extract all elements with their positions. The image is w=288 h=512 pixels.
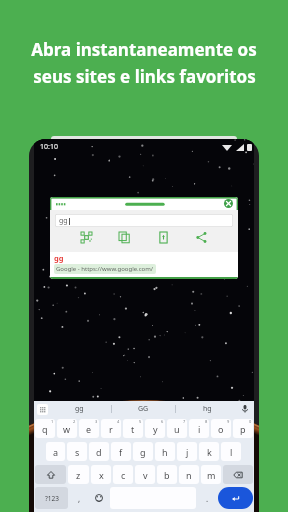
staticText: i <box>198 423 201 435</box>
staticText: gg <box>75 404 84 414</box>
staticText: 10:10 <box>40 142 58 152</box>
staticText: 8 <box>205 419 208 424</box>
button[interactable]: hg <box>176 401 239 417</box>
staticText: b <box>164 469 170 481</box>
button[interactable]: ?123 <box>35 487 68 509</box>
staticText: Google - https://www.google.com/ <box>56 265 154 273</box>
staticText: p <box>240 423 246 435</box>
staticText: gg <box>59 216 68 226</box>
staticText: y <box>153 423 158 435</box>
button[interactable]: Apagar <box>223 465 253 484</box>
staticText: x <box>99 469 104 481</box>
button[interactable]: e <box>79 419 99 438</box>
button[interactable]: n <box>179 465 199 484</box>
button[interactable]: y <box>145 419 165 438</box>
staticText: r <box>109 423 113 435</box>
button[interactable]: Enter <box>218 487 253 509</box>
button[interactable]: z <box>68 465 89 484</box>
button[interactable]: s <box>67 442 87 461</box>
button[interactable]: k <box>199 442 219 461</box>
staticText: 1 <box>51 419 54 424</box>
staticText: GG <box>138 404 149 414</box>
staticText: Abra instantaneamente os <box>31 38 257 61</box>
button[interactable]: Copiar <box>117 230 132 245</box>
button[interactable]: Emoji <box>90 487 108 509</box>
staticText: o <box>218 423 224 435</box>
button[interactable]: gg <box>55 214 233 227</box>
staticText: q <box>42 423 48 435</box>
button[interactable]: r <box>101 419 121 438</box>
button[interactable]: g <box>133 442 153 461</box>
button[interactable]: m <box>201 465 221 484</box>
button[interactable]: j <box>177 442 197 461</box>
button[interactable]: d <box>89 442 109 461</box>
staticText: z <box>76 469 81 481</box>
button[interactable]: l <box>221 442 241 461</box>
staticText: u <box>174 423 180 435</box>
staticText: n <box>186 469 192 481</box>
staticText: k <box>207 446 212 458</box>
staticText: s <box>75 446 80 458</box>
button[interactable]: f <box>111 442 131 461</box>
staticText: j <box>186 446 189 458</box>
button[interactable]: Voz <box>239 403 251 415</box>
staticText: 5 <box>139 419 142 424</box>
button[interactable]: Ferramentas <box>37 404 48 415</box>
staticText: 6 <box>161 419 164 424</box>
button[interactable]: u <box>167 419 187 438</box>
button[interactable]: b <box>157 465 177 484</box>
button[interactable]: a <box>46 442 65 461</box>
staticText: 7 <box>183 419 186 424</box>
button[interactable]: p <box>233 419 253 438</box>
staticText: d <box>96 446 102 458</box>
button[interactable]: Fechar <box>224 199 233 208</box>
staticText: . <box>206 493 209 504</box>
button[interactable]: GG <box>112 401 175 417</box>
staticText: f <box>119 446 123 458</box>
button[interactable]: Shift <box>35 465 66 484</box>
staticText: , <box>78 493 81 504</box>
button[interactable]: Partilhar <box>194 230 209 245</box>
button[interactable]: v <box>135 465 155 484</box>
staticText: t <box>131 423 135 435</box>
staticText: l <box>230 446 233 458</box>
button[interactable]: Guardar <box>156 230 171 245</box>
button[interactable]: . <box>198 487 216 509</box>
button[interactable]: gg <box>48 401 111 417</box>
button[interactable]: q <box>35 419 55 438</box>
staticText: 4 <box>117 419 120 424</box>
button[interactable]: Google - https://www.google.com/ <box>56 265 154 273</box>
staticText: gg <box>54 253 64 263</box>
staticText: a <box>53 446 59 458</box>
button[interactable]: i <box>189 419 209 438</box>
button[interactable]: Codigo QR <box>79 230 94 245</box>
staticText: hg <box>203 404 212 414</box>
staticText: e <box>86 423 92 435</box>
staticText: c <box>121 469 126 481</box>
staticText: w <box>63 423 71 435</box>
button[interactable]: w <box>57 419 77 438</box>
staticText: h <box>162 446 168 458</box>
staticText: ?123 <box>45 494 59 503</box>
staticText: g <box>140 446 146 458</box>
staticText: v <box>143 469 148 481</box>
button[interactable]: h <box>155 442 175 461</box>
button[interactable]: c <box>113 465 133 484</box>
staticText: seus sites e links favoritos <box>33 65 256 88</box>
button[interactable]: o <box>211 419 231 438</box>
button[interactable]: x <box>91 465 111 484</box>
staticText: 3 <box>95 419 98 424</box>
staticText: 9 <box>227 419 230 424</box>
button[interactable]: t <box>123 419 143 438</box>
staticText: 2 <box>73 419 76 424</box>
button[interactable]: , <box>70 487 88 509</box>
staticText: 0 <box>249 419 252 424</box>
staticText: m <box>207 469 216 481</box>
